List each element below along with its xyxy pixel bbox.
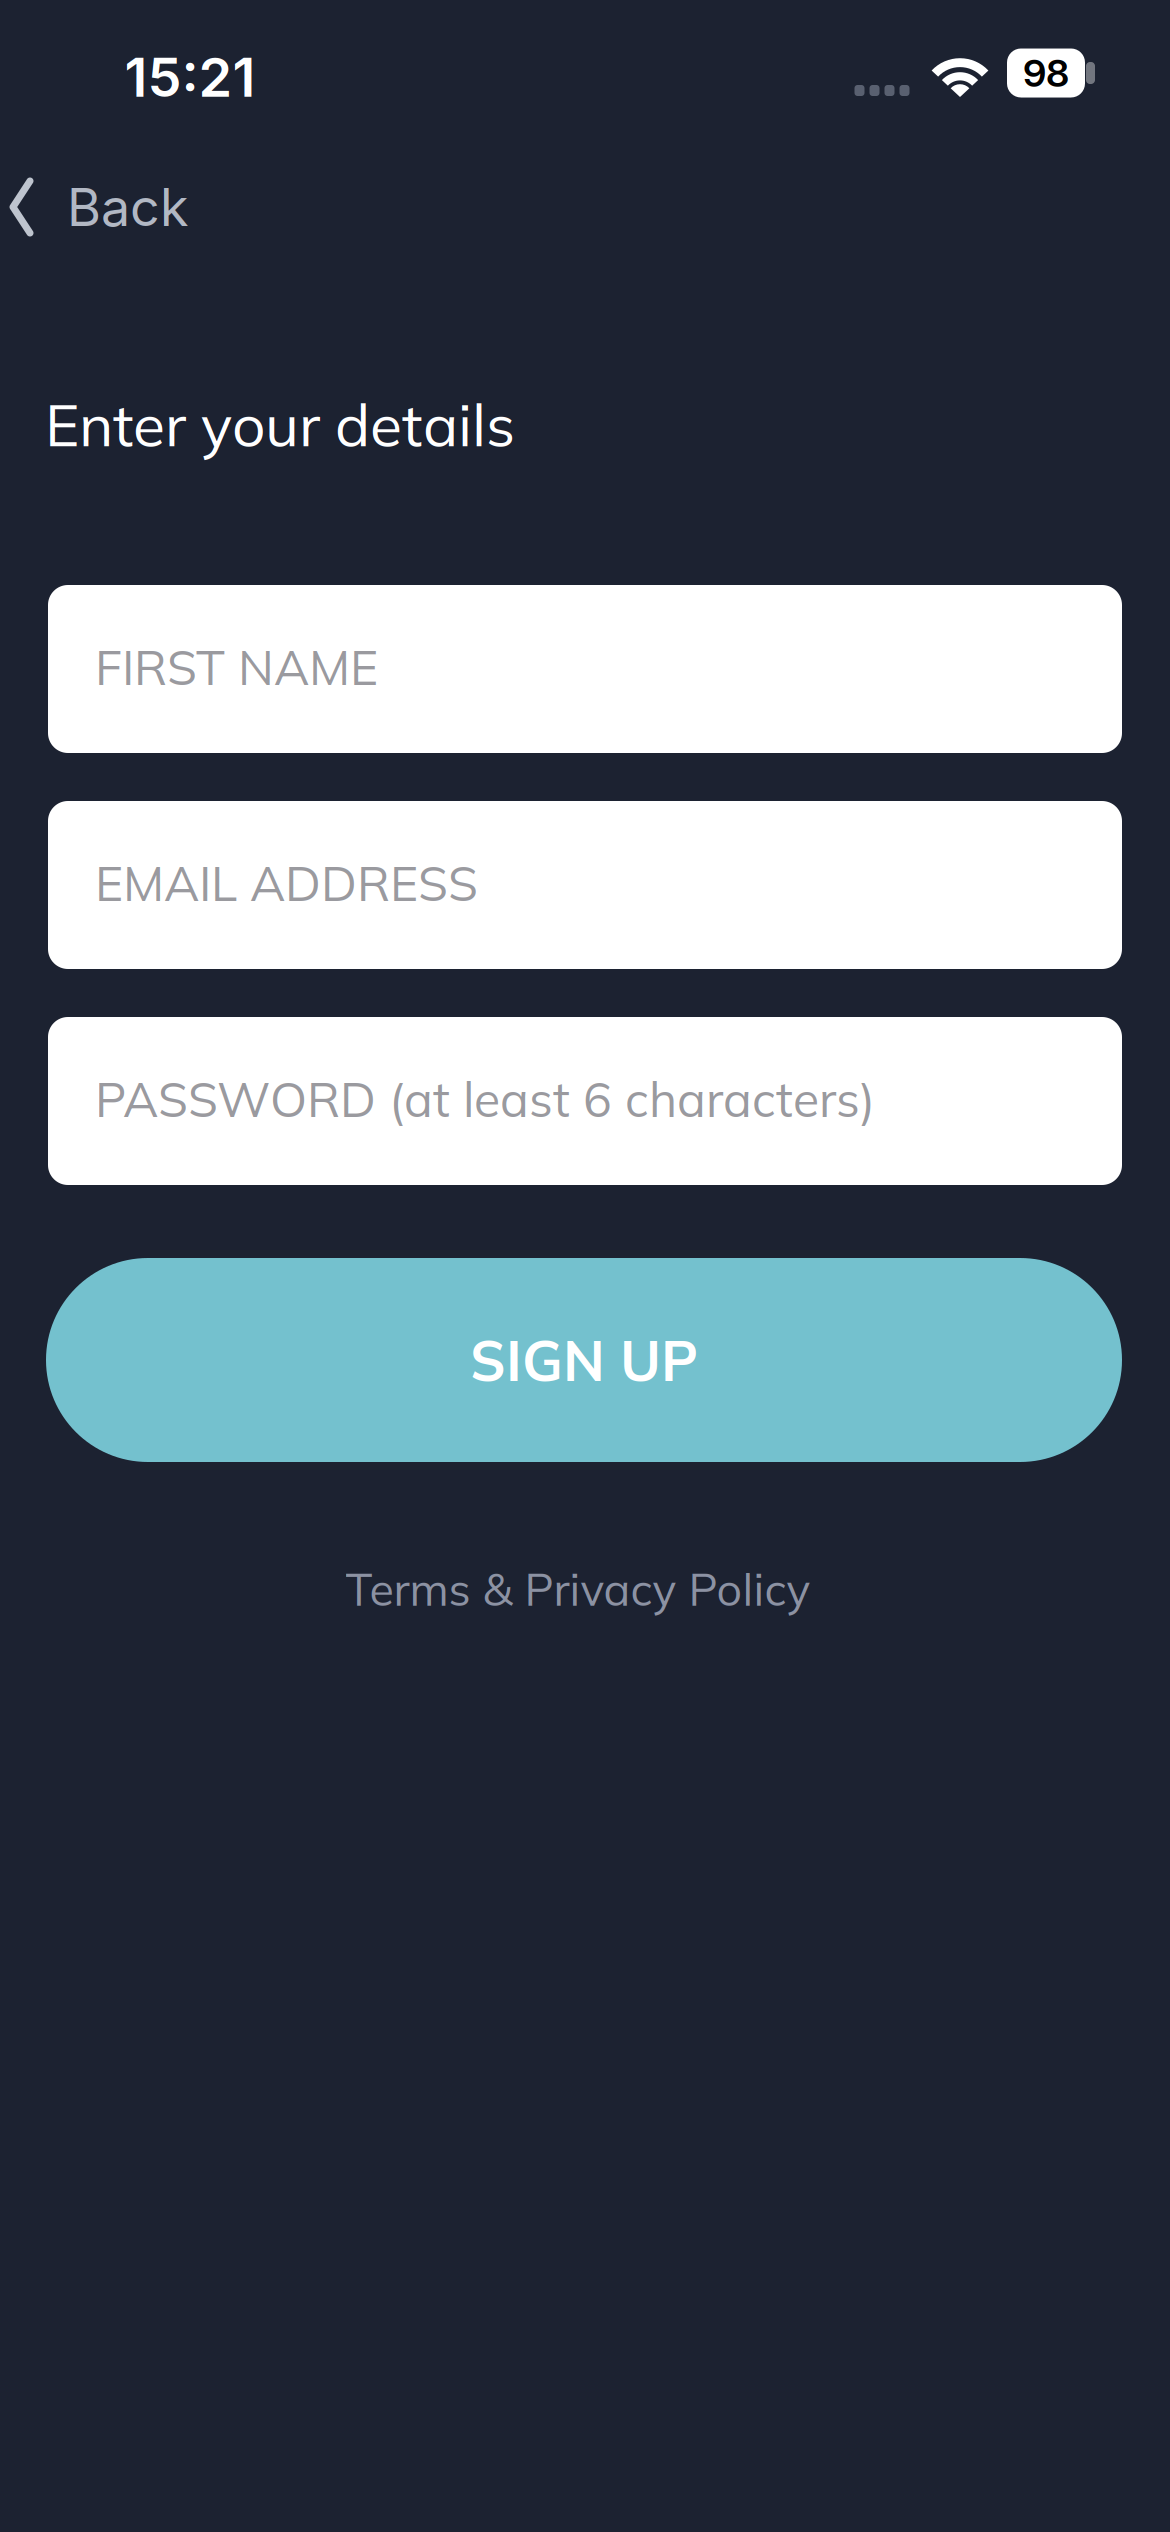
staticText: SIGN UP bbox=[470, 1325, 698, 1395]
staticText: 98 bbox=[1023, 50, 1069, 96]
staticText: PASSWORD (at least 6 characters) bbox=[95, 1069, 875, 1129]
staticText: FIRST NAME bbox=[95, 637, 378, 697]
button[interactable]: PASSWORD (at least 6 characters) bbox=[48, 1017, 1122, 1185]
button[interactable]: Terms & Privacy Policy bbox=[345, 1561, 810, 1617]
staticText: EMAIL ADDRESS bbox=[95, 853, 478, 913]
staticText: Enter your details bbox=[45, 387, 515, 461]
staticText: Back bbox=[67, 175, 189, 238]
button[interactable]: FIRST NAME bbox=[48, 585, 1122, 753]
button[interactable]: EMAIL ADDRESS bbox=[48, 801, 1122, 969]
staticText: Terms & Privacy Policy bbox=[345, 1561, 810, 1617]
staticText: 15:21 bbox=[124, 44, 255, 110]
button[interactable]: Back bbox=[4, 159, 324, 255]
button[interactable]: SIGN UP bbox=[46, 1258, 1122, 1462]
